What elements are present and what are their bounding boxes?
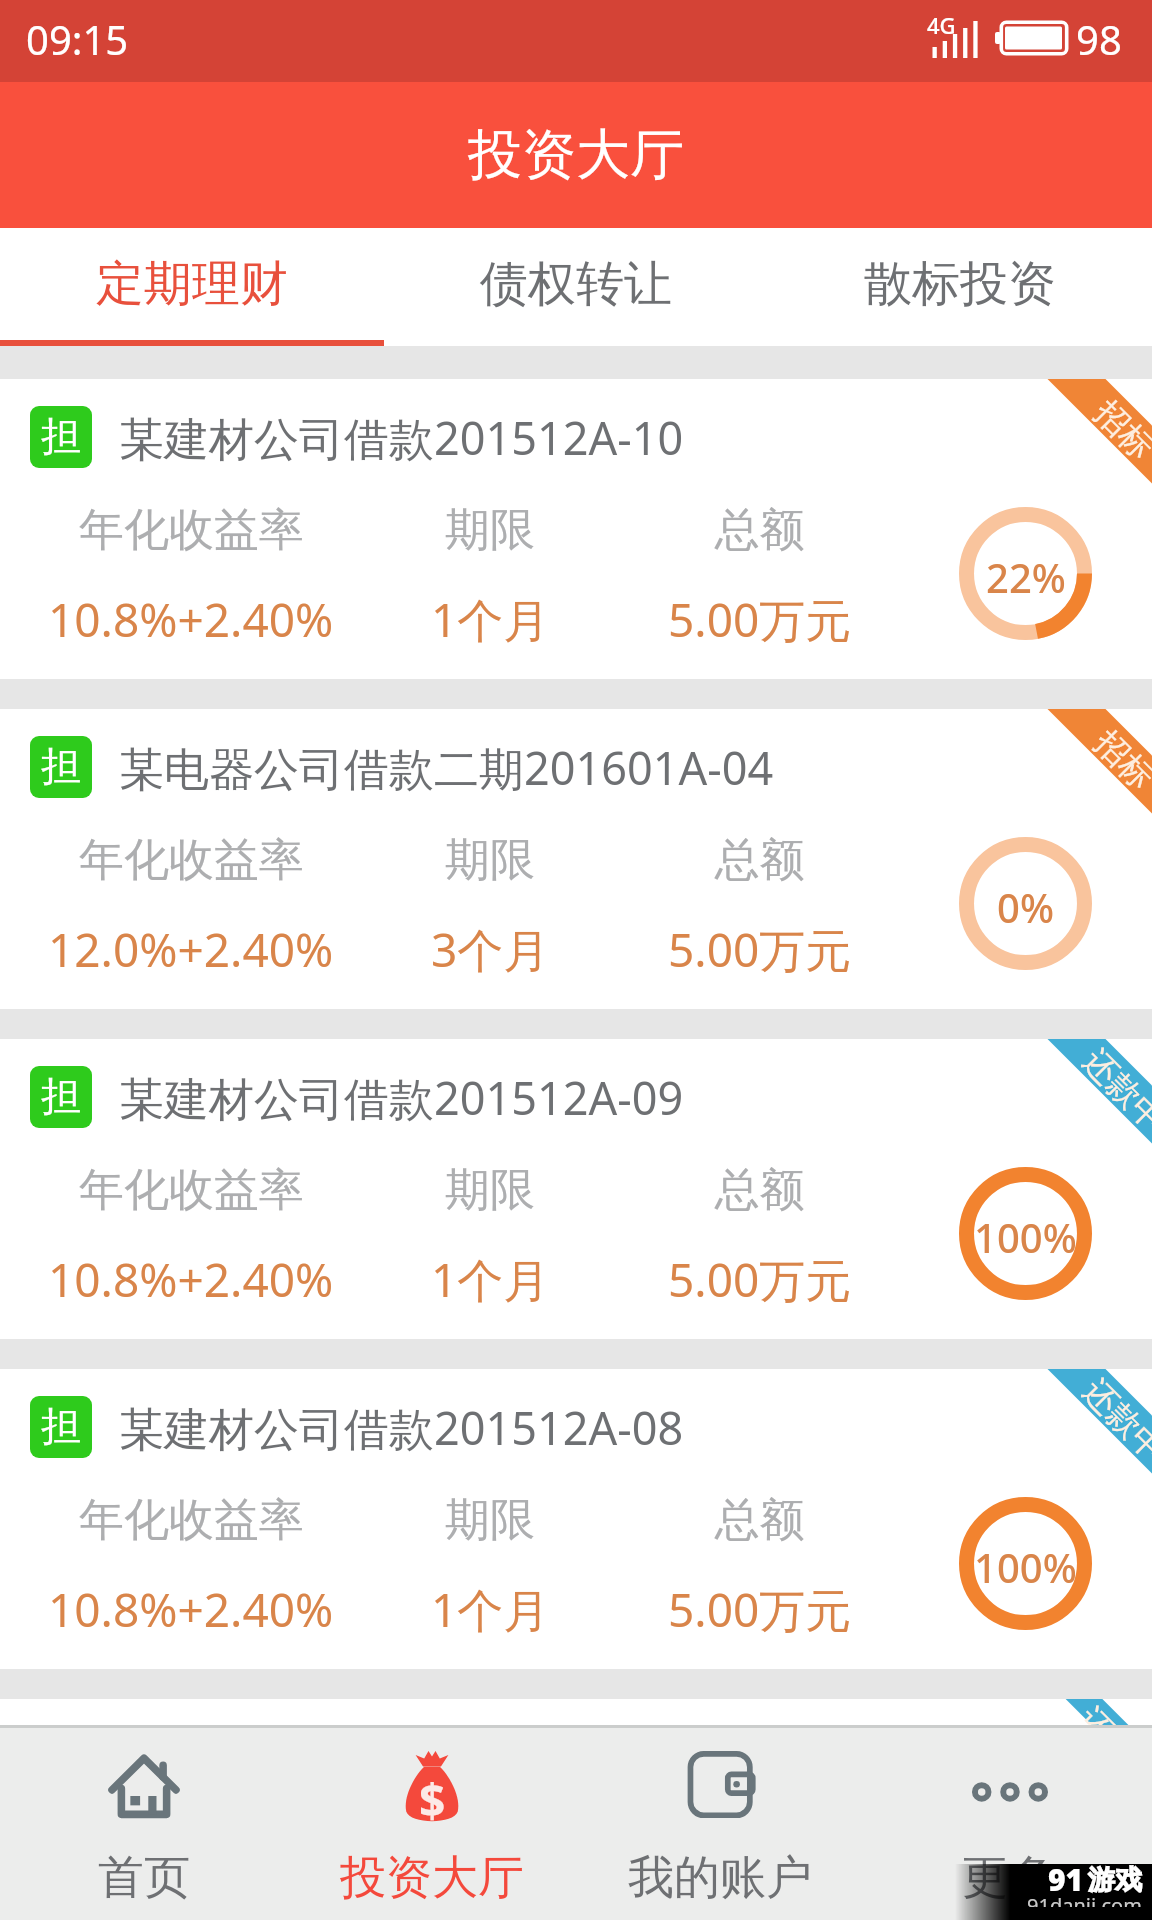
staticText: 5.00万元 — [668, 1578, 852, 1641]
staticText: 总额 — [715, 1492, 805, 1549]
staticText: 定期理财 — [96, 254, 288, 314]
staticText: 年化收益率 — [79, 1492, 304, 1549]
staticText: 招标 — [1086, 392, 1152, 467]
staticText: 100% — [974, 1210, 1077, 1264]
staticText: 债权转让 — [480, 254, 672, 314]
staticText: 散标投资 — [864, 254, 1056, 314]
staticText: 98 — [1076, 12, 1122, 66]
button[interactable]: 定期理财 — [0, 228, 384, 346]
staticText: 22% — [986, 550, 1066, 604]
button[interactable]: 我的账户 — [576, 1728, 864, 1920]
staticText: 1个月 — [431, 1578, 550, 1641]
button[interactable]: 首页 — [0, 1728, 288, 1920]
staticText: 年化收益率 — [79, 832, 304, 889]
staticText: 还款中 — [1080, 1699, 1152, 1725]
staticText: 5.00万元 — [668, 588, 852, 651]
staticText: 91 — [1048, 1864, 1084, 1900]
staticText: 首页 — [98, 1849, 190, 1907]
staticText: 3个月 — [431, 918, 550, 981]
staticText: 总额 — [715, 1162, 805, 1219]
staticText: 投资大厅 — [340, 1849, 524, 1907]
button[interactable]: 还款中 — [0, 1039, 1152, 1339]
staticText: 游戏 — [1088, 1864, 1142, 1897]
staticText: 总额 — [715, 832, 805, 889]
staticText: 担 — [41, 411, 81, 461]
button[interactable]: 招标 — [0, 709, 1152, 1009]
staticText: 担 — [41, 1401, 81, 1451]
staticText: 1个月 — [431, 588, 550, 651]
button[interactable]: 散标投资 — [768, 228, 1152, 346]
staticText: 期限 — [445, 832, 535, 889]
staticText: 期限 — [445, 1492, 535, 1549]
staticText: 0% — [997, 880, 1054, 934]
button[interactable]: 更多 — [864, 1728, 1152, 1920]
button[interactable]: 招标 — [0, 379, 1152, 679]
staticText: 担 — [41, 1071, 81, 1121]
staticText: 10.8%+2.40% — [48, 1248, 334, 1311]
staticText: 1个月 — [431, 1248, 550, 1311]
staticText: 期限 — [445, 1162, 535, 1219]
staticText: 我的账户 — [628, 1849, 812, 1907]
staticText: 招标 — [1086, 722, 1152, 797]
staticText: $ — [419, 1769, 446, 1832]
staticText: 某建材公司借款201512A-10 — [119, 407, 684, 468]
button[interactable]: 债权转让 — [384, 228, 768, 346]
staticText: 10.8%+2.40% — [48, 588, 334, 651]
staticText: 年化收益率 — [79, 502, 304, 559]
staticText: 91danji.com — [1027, 1892, 1142, 1907]
staticText: 期限 — [445, 502, 535, 559]
staticText: 10.8%+2.40% — [48, 1578, 334, 1641]
staticText: 12.0%+2.40% — [48, 918, 334, 981]
staticText: 4G — [927, 10, 956, 40]
staticText: 年化收益率 — [79, 1162, 304, 1219]
staticText: 100% — [974, 1540, 1077, 1594]
staticText: 5.00万元 — [668, 918, 852, 981]
staticText: 总额 — [715, 502, 805, 559]
staticText: 某建材公司借款201512A-08 — [119, 1397, 684, 1458]
staticText: 某电器公司借款二期201601A-04 — [119, 737, 774, 798]
staticText: 更多 — [962, 1849, 1054, 1907]
staticText: 担 — [41, 741, 81, 791]
staticText: 还款中 — [1075, 1370, 1152, 1469]
staticText: 5.00万元 — [668, 1248, 852, 1311]
staticText: 09:15 — [26, 12, 129, 66]
staticText: 投资大厅 — [468, 121, 684, 189]
button[interactable]: 还款中 — [0, 1369, 1152, 1669]
staticText: 还款中 — [1075, 1040, 1152, 1139]
button[interactable]: $ — [288, 1728, 576, 1920]
staticText: 某建材公司借款201512A-09 — [119, 1067, 684, 1128]
